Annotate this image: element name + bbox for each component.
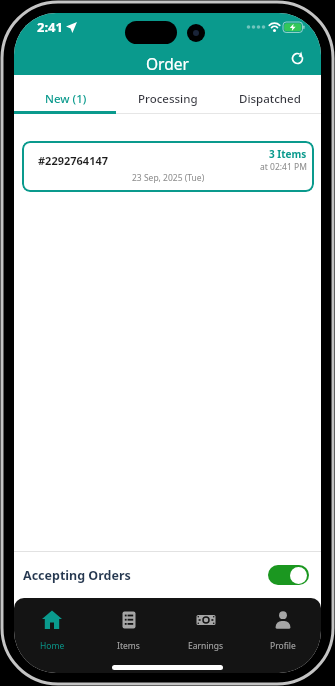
staticText: Processing [138, 91, 198, 107]
button[interactable]: New (1) [14, 75, 117, 114]
staticText: Order [146, 53, 189, 74]
staticText: Items [117, 640, 140, 652]
button[interactable]: Processing [117, 75, 219, 114]
staticText: at 02:41 PM [260, 161, 307, 173]
button[interactable]: Earnings [167, 609, 244, 652]
staticText: 2:41 [37, 18, 63, 36]
staticText: #2292764147 [38, 153, 109, 168]
staticText: Dispatched [239, 91, 301, 107]
button[interactable] [268, 565, 309, 585]
button[interactable]: Dispatched [219, 75, 321, 114]
button[interactable]: Home [14, 609, 90, 652]
staticText: Profile [270, 640, 296, 652]
button[interactable]: Items [90, 609, 167, 652]
staticText: Accepting Orders [23, 567, 131, 584]
staticText: 23 Sep, 2025 (Tue) [132, 172, 205, 184]
staticText: Earnings [188, 640, 224, 652]
button[interactable]: Profile [244, 609, 321, 652]
staticText: Home [40, 640, 65, 652]
staticText: 3 Items [269, 147, 307, 161]
button[interactable]: #2292764147 [22, 141, 314, 192]
staticText: New (1) [45, 91, 87, 107]
button[interactable] [291, 52, 304, 65]
